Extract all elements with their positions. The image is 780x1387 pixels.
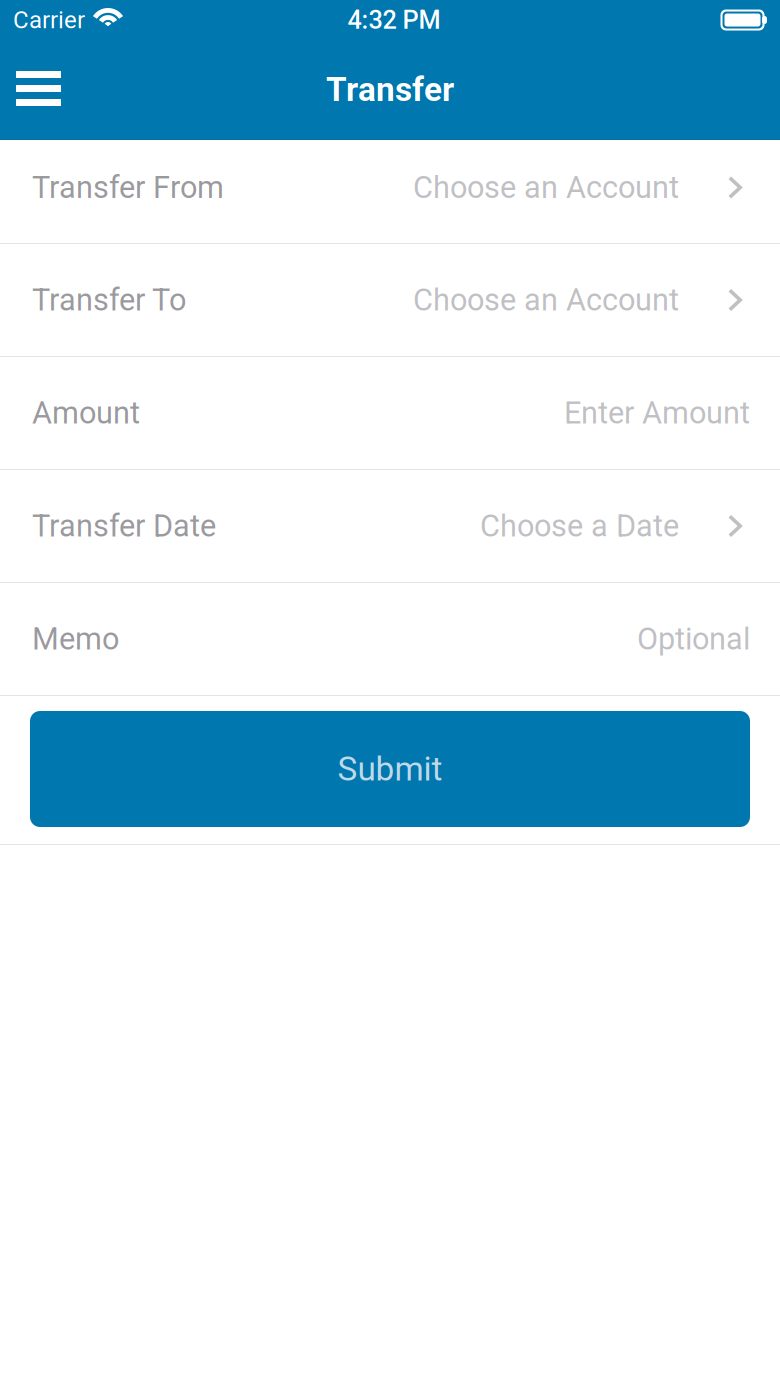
staticText: Transfer From (32, 169, 224, 205)
staticText: Memo (32, 621, 119, 657)
staticText: Transfer To (32, 282, 186, 318)
staticText: Choose an Account (413, 282, 679, 318)
staticText: Transfer Date (32, 508, 216, 544)
staticText: Choose a Date (480, 508, 679, 544)
button[interactable]: Transfer Date (0, 470, 780, 582)
staticText: Amount (32, 395, 140, 431)
staticText: Optional (637, 621, 750, 657)
button[interactable]: Transfer To (0, 244, 780, 356)
button[interactable]: Submit (30, 711, 750, 827)
staticText: Submit (337, 749, 442, 789)
button[interactable]: Memo (0, 583, 780, 695)
staticText: Carrier (13, 6, 85, 34)
staticText: Transfer (326, 70, 454, 109)
button[interactable]: Transfer From (0, 140, 780, 243)
button[interactable]: Amount (0, 357, 780, 469)
button[interactable]: Menu (0, 53, 77, 125)
staticText: Enter Amount (564, 395, 750, 431)
staticText: 4:32 PM (347, 5, 440, 35)
staticText: Choose an Account (413, 169, 679, 205)
